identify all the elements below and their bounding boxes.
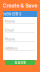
staticText: New Entry [3,12,21,16]
staticText: Phone [5,37,15,41]
staticText: Address [5,46,18,50]
staticText: SAVE [14,60,25,65]
staticText: Name [5,19,15,23]
staticText: Create & Save [2,2,37,9]
staticText: Email [5,28,14,32]
button[interactable]: SAVE [5,60,35,65]
